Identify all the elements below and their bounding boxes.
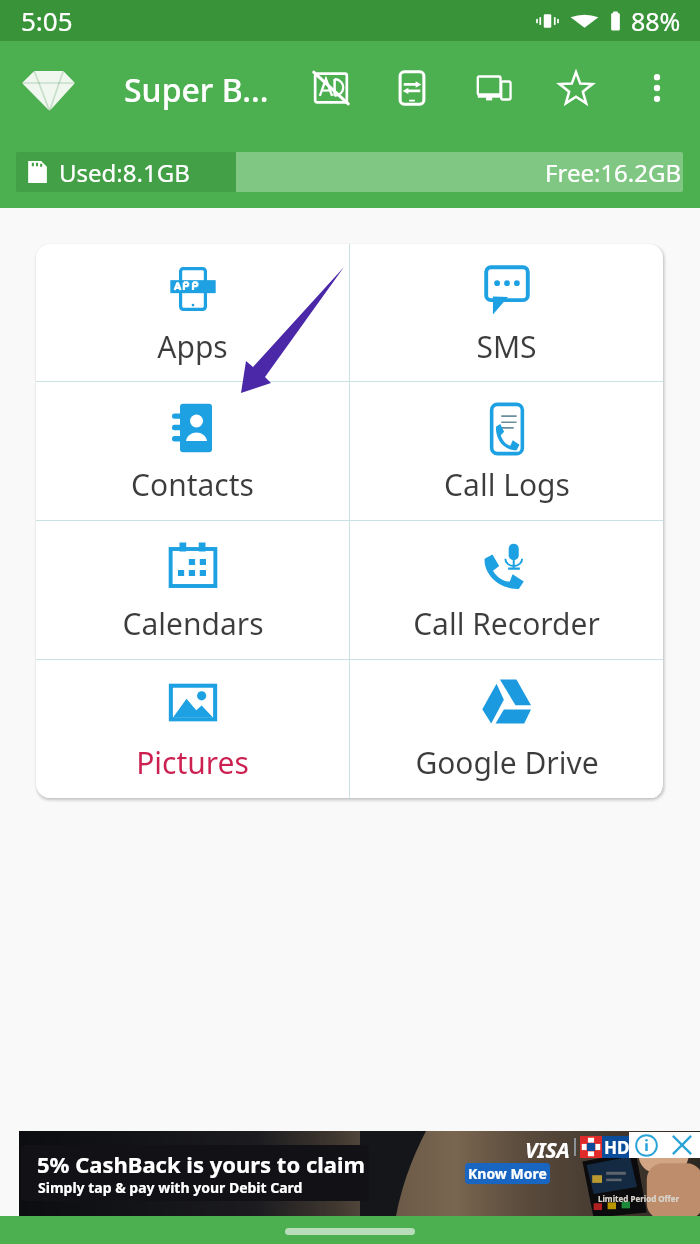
- button[interactable]: Call Logs: [350, 382, 663, 520]
- button[interactable]: Connect to computer: [470, 64, 518, 112]
- staticText: Limited Period Offer: [598, 1193, 680, 1204]
- button[interactable]: Ad information: [629, 1132, 663, 1158]
- button[interactable]: Phone transfer: [388, 64, 436, 112]
- button[interactable]: Google Drive: [350, 660, 663, 798]
- staticText: Call Recorder: [413, 603, 600, 644]
- staticText: 5:05: [21, 3, 73, 38]
- staticText: Used:8.1GB: [59, 156, 190, 189]
- button[interactable]: Know More: [465, 1163, 550, 1184]
- button[interactable]: Rate us: [552, 64, 600, 112]
- staticText: Free:16.2GB: [545, 156, 682, 189]
- button[interactable]: Close ad: [663, 1132, 700, 1158]
- button[interactable]: SMS: [350, 244, 663, 381]
- staticText: 5% CashBack is yours to claim: [37, 1149, 365, 1179]
- button[interactable]: Pictures: [36, 660, 349, 798]
- button[interactable]: App logo: [8, 58, 88, 124]
- button[interactable]: Call Recorder: [350, 521, 663, 659]
- button[interactable]: Apps: [36, 244, 349, 381]
- staticText: Call Logs: [444, 464, 570, 505]
- staticText: Pictures: [136, 742, 249, 783]
- staticText: 88%: [631, 4, 681, 38]
- staticText: Simply tap & pay with your Debit Card: [38, 1178, 303, 1197]
- button[interactable]: Contacts: [36, 382, 349, 520]
- button[interactable]: Calendars: [36, 521, 349, 659]
- staticText: HDFC: [604, 1136, 650, 1158]
- staticText: VISA: [525, 1136, 570, 1165]
- staticText: Apps: [157, 326, 228, 367]
- button[interactable]: More options: [633, 64, 681, 112]
- staticText: Know More: [468, 1164, 547, 1183]
- staticText: Contacts: [131, 464, 254, 505]
- button[interactable]: Remove ads: [307, 64, 355, 112]
- staticText: Calendars: [122, 603, 264, 644]
- staticText: Google Drive: [415, 742, 599, 783]
- button[interactable]: 5% CashBack is yours to claim: [21, 1145, 369, 1201]
- staticText: Super B...: [124, 68, 269, 112]
- staticText: SMS: [476, 326, 537, 367]
- button[interactable]: Used:8.1GB: [16, 152, 683, 192]
